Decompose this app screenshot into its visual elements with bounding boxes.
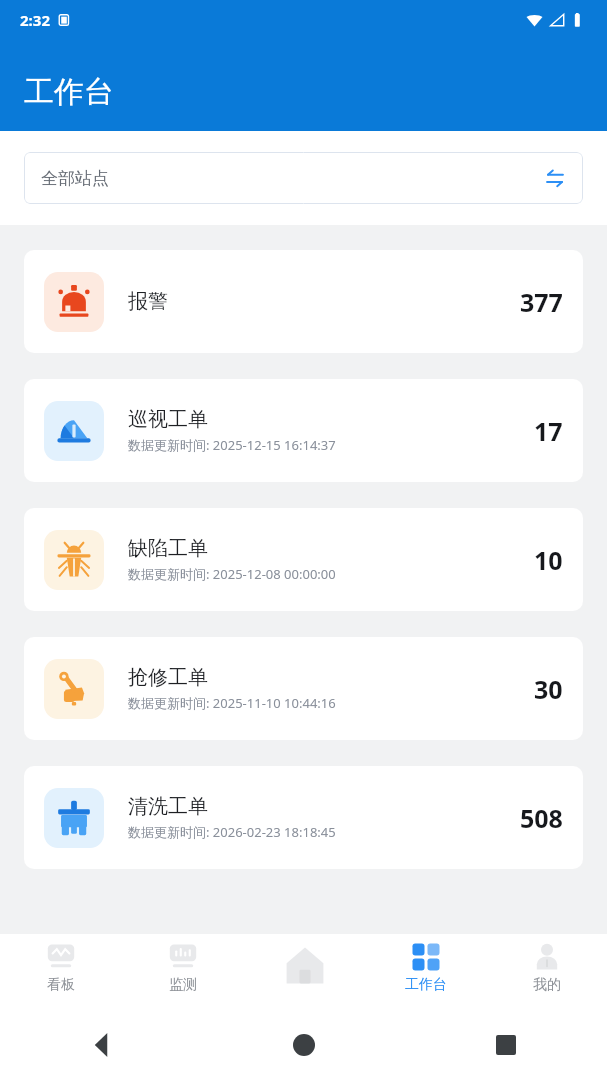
button[interactable]: 报警: [24, 250, 583, 353]
staticText: 缺陷工单: [128, 536, 208, 561]
button[interactable]: 工作台: [365, 934, 486, 1010]
staticText: 监测: [169, 976, 197, 994]
staticText: 全部站点: [41, 168, 109, 189]
staticText: 10: [534, 543, 563, 577]
button[interactable]: 全部站点: [24, 152, 583, 204]
staticText: 508: [520, 801, 563, 835]
staticText: 我的: [533, 976, 561, 994]
button[interactable]: 我的: [486, 934, 607, 1010]
staticText: 数据更新时间: 2025-12-08 00:00:00: [128, 565, 336, 583]
button[interactable]: 清洗工单: [24, 766, 583, 869]
button[interactable]: 抢修工单: [24, 637, 583, 740]
staticText: 17: [534, 414, 563, 448]
button[interactable]: 缺陷工单: [24, 508, 583, 611]
staticText: 报警: [128, 289, 168, 314]
other: Back: [90, 1033, 114, 1057]
staticText: 30: [534, 672, 563, 706]
staticText: 巡视工单: [128, 407, 208, 432]
staticText: 377: [520, 285, 563, 319]
other: Home button: [293, 1034, 315, 1056]
staticText: 清洗工单: [128, 794, 208, 819]
button[interactable]: 巡视工单: [24, 379, 583, 482]
staticText: 数据更新时间: 2026-02-23 18:18:45: [128, 823, 336, 841]
staticText: 工作台: [405, 976, 447, 994]
button[interactable]: Home: [244, 934, 365, 1010]
button[interactable]: 看板: [0, 934, 122, 1010]
staticText: 2:32: [20, 10, 50, 30]
staticText: 看板: [47, 976, 75, 994]
other: Recents: [496, 1035, 516, 1055]
staticText: 数据更新时间: 2025-11-10 10:44:16: [128, 694, 336, 712]
button[interactable]: 监测: [122, 934, 244, 1010]
staticText: 工作台: [24, 73, 114, 111]
staticText: 数据更新时间: 2025-12-15 16:14:37: [128, 436, 336, 454]
staticText: 抢修工单: [128, 665, 208, 690]
